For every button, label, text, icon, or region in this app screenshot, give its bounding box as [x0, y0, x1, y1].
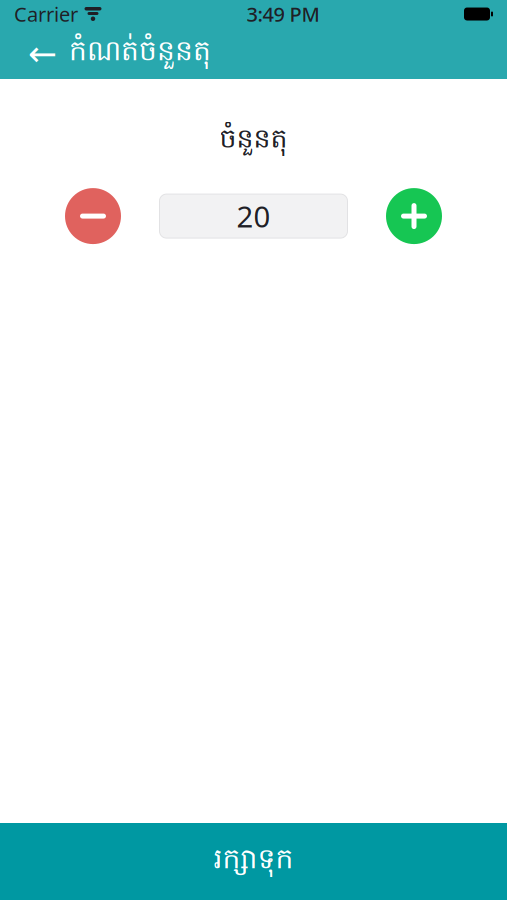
staticText: រក្សាទុក	[213, 841, 293, 881]
staticText: ←	[28, 34, 57, 73]
button[interactable]: Decrease	[65, 188, 121, 244]
button[interactable]: ←	[14, 25, 225, 81]
staticText: Carrier	[14, 1, 78, 27]
button[interactable]: រក្សាទុក	[0, 823, 507, 900]
staticText: កំណត់ចំនួនតុ	[69, 33, 211, 73]
staticText: ចំនួនតុ	[219, 122, 287, 160]
staticText: 20	[236, 197, 270, 236]
button[interactable]: Increase	[386, 188, 442, 244]
staticText: 3:49 PM	[246, 1, 319, 27]
